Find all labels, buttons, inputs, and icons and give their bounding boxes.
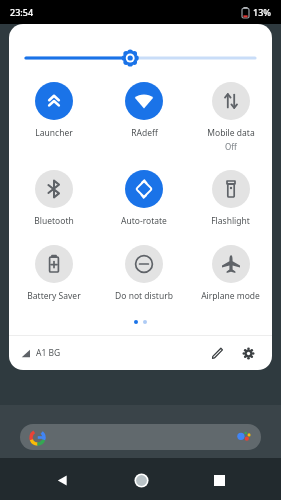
button[interactable]: Home bbox=[124, 463, 158, 497]
button[interactable]: Recents bbox=[202, 463, 236, 497]
staticText: A1 BG bbox=[36, 347, 61, 359]
button[interactable]: Auto-rotate bbox=[99, 170, 189, 227]
button[interactable]: Edit bbox=[205, 341, 229, 365]
button[interactable]: Launcher bbox=[9, 82, 99, 139]
button[interactable]: Flashlight bbox=[189, 170, 272, 227]
staticText: Do not disturb bbox=[115, 290, 173, 302]
staticText: Launcher bbox=[35, 127, 73, 139]
button[interactable]: Bluetooth bbox=[9, 170, 99, 227]
staticText: 23:54 bbox=[10, 6, 34, 18]
staticText: 13% bbox=[253, 6, 271, 18]
button[interactable]: Wi-Fi RAdeff bbox=[99, 82, 189, 139]
staticText: Bluetooth bbox=[34, 215, 74, 227]
staticText: RAdeff bbox=[131, 127, 158, 139]
button[interactable]: Mobile data off bbox=[189, 82, 272, 152]
staticText: Airplane mode bbox=[201, 290, 260, 302]
button[interactable]: Settings bbox=[236, 341, 260, 365]
button[interactable]: Do not disturb bbox=[99, 245, 189, 302]
staticText: Mobile data bbox=[207, 127, 255, 139]
staticText: Off bbox=[225, 141, 237, 152]
button[interactable]: Airplane mode bbox=[189, 245, 272, 302]
button[interactable]: Search bbox=[20, 424, 261, 450]
button[interactable]: Back bbox=[45, 463, 79, 497]
staticText: Battery Saver bbox=[27, 290, 81, 302]
staticText: Flashlight bbox=[211, 215, 250, 227]
button[interactable]: Battery Saver bbox=[9, 245, 99, 302]
staticText: Auto-rotate bbox=[121, 215, 167, 227]
